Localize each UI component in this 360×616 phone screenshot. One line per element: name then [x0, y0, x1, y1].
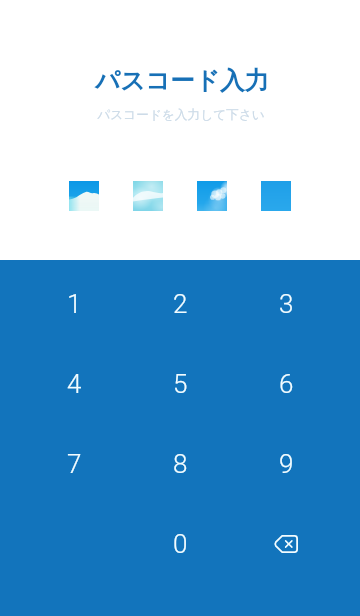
staticText: 0 [173, 529, 188, 559]
button[interactable]: 4 [21, 344, 127, 424]
staticText: 1 [67, 289, 82, 319]
button[interactable]: 7 [21, 424, 127, 504]
staticText: 8 [173, 449, 188, 479]
staticText: 2 [173, 289, 188, 319]
button[interactable]: 5 [127, 344, 233, 424]
button[interactable]: 1 [21, 264, 127, 344]
staticText: 9 [279, 449, 294, 479]
button[interactable]: 9 [233, 424, 339, 504]
staticText: 3 [279, 289, 294, 319]
button[interactable]: 6 [233, 344, 339, 424]
staticText: パスコード入力 [2, 65, 360, 96]
button[interactable]: 3 [233, 264, 339, 344]
staticText: パスコードを入力して下さい [1, 107, 360, 123]
button[interactable]: 8 [127, 424, 233, 504]
staticText: 5 [173, 369, 188, 399]
button[interactable]: 2 [127, 264, 233, 344]
staticText: 7 [67, 449, 82, 479]
button[interactable]: 0 [127, 504, 233, 584]
button[interactable]: Delete [233, 504, 339, 584]
staticText: 6 [279, 369, 294, 399]
staticText: 4 [67, 369, 82, 399]
